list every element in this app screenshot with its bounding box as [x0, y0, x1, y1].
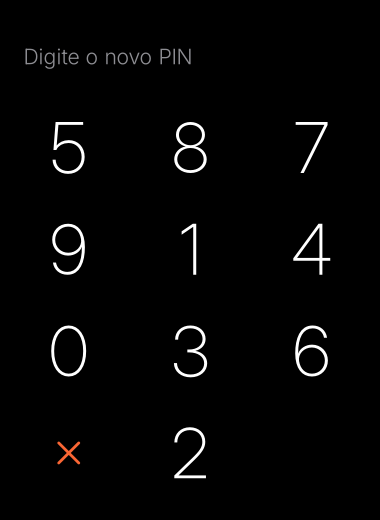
staticText: 3 [171, 309, 209, 393]
button[interactable]: 1 [129, 199, 251, 300]
staticText: 4 [291, 208, 332, 291]
button[interactable]: 6 [251, 300, 372, 402]
staticText: 8 [172, 106, 209, 190]
button[interactable]: 3 [129, 300, 251, 402]
staticText: 6 [293, 309, 331, 393]
button[interactable]: 8 [129, 97, 251, 199]
staticText: 9 [50, 208, 88, 291]
button[interactable]: Erase [8, 402, 129, 504]
button[interactable]: 9 [8, 199, 129, 300]
staticText: 0 [49, 309, 89, 393]
staticText: 1 [179, 208, 201, 291]
button[interactable]: 4 [251, 199, 372, 300]
button[interactable]: 7 [251, 97, 372, 199]
staticText: 7 [294, 106, 330, 190]
button[interactable]: 2 [129, 402, 251, 504]
staticText: Digite o novo PIN [23, 43, 192, 69]
staticText: 2 [171, 411, 209, 495]
button[interactable]: 5 [8, 97, 129, 199]
button[interactable]: 0 [8, 300, 129, 402]
staticText: 5 [50, 106, 87, 190]
